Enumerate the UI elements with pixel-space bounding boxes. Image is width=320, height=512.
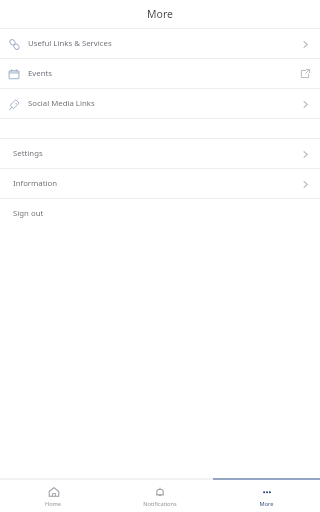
staticText: Useful Links & Services — [28, 38, 112, 49]
button[interactable]: Sign out — [0, 199, 320, 228]
button[interactable]: More — [213, 480, 320, 512]
staticText: More — [147, 7, 173, 21]
button[interactable]: Settings — [0, 139, 320, 168]
button[interactable]: Information — [0, 169, 320, 198]
staticText: More — [259, 500, 274, 508]
other: Open — [301, 100, 310, 109]
button[interactable]: Home — [0, 480, 106, 512]
staticText: Settings — [13, 148, 43, 159]
other: Open — [301, 180, 310, 189]
button[interactable]: Notifications — [106, 480, 213, 512]
button[interactable]: Events — [0, 59, 320, 88]
other: Open — [301, 40, 310, 49]
staticText: Events — [28, 68, 53, 79]
button[interactable]: Social Media Links — [0, 89, 320, 118]
button[interactable]: Useful Links & Services — [0, 29, 320, 58]
other: Open external link — [300, 69, 310, 79]
other: Open — [301, 150, 310, 159]
staticText: Information — [13, 178, 58, 189]
staticText: Sign out — [13, 208, 44, 219]
staticText: Notifications — [143, 500, 177, 508]
staticText: Social Media Links — [28, 98, 95, 109]
staticText: Home — [45, 500, 61, 508]
